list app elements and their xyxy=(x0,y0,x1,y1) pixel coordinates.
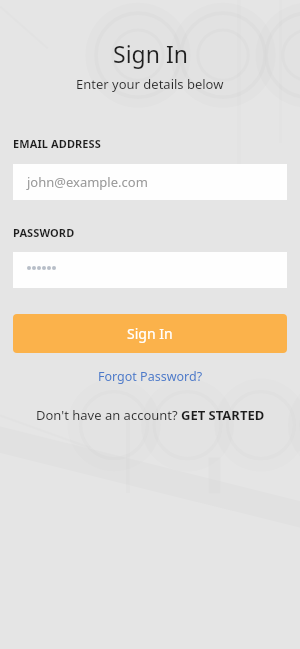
button[interactable]: Forgot Password? xyxy=(92,366,209,387)
button[interactable]: john@example.com xyxy=(13,164,287,200)
staticText: PASSWORD xyxy=(13,225,75,240)
staticText: Forgot Password? xyxy=(98,368,203,385)
button[interactable]: Sign In xyxy=(13,314,287,353)
staticText: Don't have an account? GET STARTED xyxy=(36,406,265,424)
staticText: Sign In xyxy=(113,38,188,69)
staticText: Sign In xyxy=(127,324,173,343)
button[interactable] xyxy=(13,252,287,288)
staticText: john@example.com xyxy=(27,173,148,191)
staticText: EMAIL ADDRESS xyxy=(13,136,101,151)
button[interactable]: Don't have an account? GET STARTED xyxy=(30,404,271,426)
staticText: Enter your details below xyxy=(76,75,224,93)
